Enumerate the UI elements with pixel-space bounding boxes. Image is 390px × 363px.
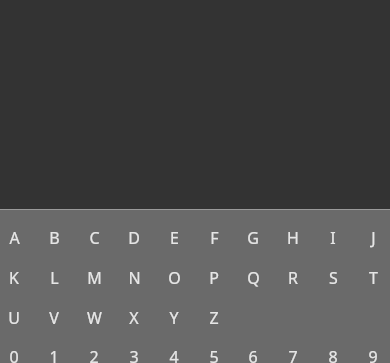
- button[interactable]: Key J: [353, 218, 390, 258]
- staticText: H: [287, 227, 299, 249]
- button[interactable]: Key 1: [34, 337, 74, 363]
- button[interactable]: Key L: [34, 258, 74, 298]
- staticText: M: [87, 267, 102, 289]
- staticText: 3: [129, 346, 139, 363]
- button[interactable]: Key M: [74, 258, 114, 298]
- staticText: K: [9, 267, 19, 289]
- staticText: B: [49, 227, 60, 249]
- staticText: E: [170, 227, 179, 249]
- button[interactable]: Key 0: [0, 337, 34, 363]
- button[interactable]: Key S: [313, 258, 353, 298]
- button[interactable]: Key T: [353, 258, 390, 298]
- button[interactable]: Key D: [114, 218, 154, 258]
- staticText: I: [330, 227, 336, 249]
- button[interactable]: Key F: [194, 218, 234, 258]
- staticText: 6: [248, 346, 258, 363]
- staticText: 1: [49, 346, 59, 363]
- staticText: L: [50, 267, 59, 289]
- button[interactable]: Key 8: [313, 337, 353, 363]
- staticText: X: [129, 307, 139, 329]
- staticText: P: [209, 267, 219, 289]
- staticText: 9: [368, 346, 378, 363]
- button[interactable]: Key 9: [353, 337, 390, 363]
- button[interactable]: Key V: [34, 298, 74, 338]
- staticText: Y: [169, 307, 179, 329]
- staticText: T: [369, 267, 378, 289]
- button[interactable]: Key H: [273, 218, 313, 258]
- staticText: Z: [209, 307, 219, 329]
- button[interactable]: Key 4: [154, 337, 194, 363]
- staticText: Q: [247, 267, 260, 289]
- staticText: G: [247, 227, 259, 249]
- staticText: C: [89, 227, 100, 249]
- button[interactable]: Key 5: [194, 337, 234, 363]
- button[interactable]: Key Z: [194, 298, 234, 338]
- staticText: U: [8, 307, 20, 329]
- button[interactable]: Key A: [0, 218, 34, 258]
- staticText: 8: [328, 346, 338, 363]
- button[interactable]: Key N: [114, 258, 154, 298]
- staticText: R: [288, 267, 298, 289]
- staticText: A: [9, 227, 20, 249]
- button[interactable]: Key O: [154, 258, 194, 298]
- button[interactable]: Key B: [34, 218, 74, 258]
- staticText: 4: [169, 346, 179, 363]
- button[interactable]: Key U: [0, 298, 34, 338]
- staticText: O: [168, 267, 181, 289]
- button[interactable]: Key W: [74, 298, 114, 338]
- staticText: 2: [89, 346, 99, 363]
- button[interactable]: Key 6: [233, 337, 273, 363]
- staticText: 0: [9, 346, 19, 363]
- staticText: 7: [288, 346, 298, 363]
- button[interactable]: Key R: [273, 258, 313, 298]
- button[interactable]: Key I: [313, 218, 353, 258]
- button[interactable]: Key Y: [154, 298, 194, 338]
- button[interactable]: Key Q: [233, 258, 273, 298]
- staticText: J: [371, 227, 376, 249]
- button[interactable]: Key 2: [74, 337, 114, 363]
- button[interactable]: Key E: [154, 218, 194, 258]
- staticText: D: [128, 227, 140, 249]
- staticText: W: [87, 307, 102, 329]
- button[interactable]: Key C: [74, 218, 114, 258]
- button[interactable]: Key K: [0, 258, 34, 298]
- staticText: N: [128, 267, 141, 289]
- button[interactable]: Key 3: [114, 337, 154, 363]
- staticText: V: [49, 307, 59, 329]
- button[interactable]: Key P: [194, 258, 234, 298]
- button[interactable]: Key X: [114, 298, 154, 338]
- staticText: 5: [209, 346, 219, 363]
- button[interactable]: Key G: [233, 218, 273, 258]
- button[interactable]: Key 7: [273, 337, 313, 363]
- staticText: F: [210, 227, 219, 249]
- staticText: S: [329, 267, 338, 289]
